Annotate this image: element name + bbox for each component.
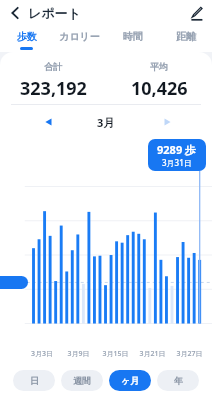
staticText: 3月31日 xyxy=(162,157,192,168)
button[interactable]: 年 xyxy=(157,370,199,391)
button[interactable]: ヶ月 xyxy=(109,370,151,391)
button[interactable]: 日 xyxy=(13,370,55,391)
staticText: 日 xyxy=(30,375,39,386)
button[interactable]: Back xyxy=(3,2,25,24)
staticText: 平均 xyxy=(150,61,168,72)
staticText: 10,426 xyxy=(131,76,188,101)
staticText: 歩数 xyxy=(17,30,37,43)
staticText: 323,192 xyxy=(20,76,87,101)
button[interactable]: Next month xyxy=(158,113,176,131)
staticText: 距離 xyxy=(176,30,196,43)
staticText: 3月 xyxy=(97,115,115,130)
staticText: 合計 xyxy=(44,61,62,72)
staticText: 3月3日 xyxy=(24,349,60,359)
button[interactable]: カロリー xyxy=(53,26,106,52)
button[interactable]: 距離 xyxy=(159,26,212,52)
staticText: 3月27日 xyxy=(171,349,208,359)
staticText: カロリー xyxy=(59,30,100,43)
staticText: 週間 xyxy=(73,375,91,386)
staticText: 3月15日 xyxy=(97,349,134,359)
staticText: 3月21日 xyxy=(134,349,171,359)
staticText: 9289 歩 xyxy=(157,142,197,157)
button[interactable]: 時間 xyxy=(106,26,159,52)
staticText: レポート xyxy=(28,5,81,21)
staticText: ヶ月 xyxy=(121,375,140,386)
staticText: 時間 xyxy=(123,30,143,43)
staticText: 3月9日 xyxy=(60,349,97,359)
button[interactable]: Previous month xyxy=(40,113,58,131)
button[interactable]: Edit xyxy=(186,3,206,23)
button[interactable]: 歩数 xyxy=(0,26,53,52)
staticText: 年 xyxy=(174,375,183,386)
button[interactable]: 週間 xyxy=(61,370,103,391)
